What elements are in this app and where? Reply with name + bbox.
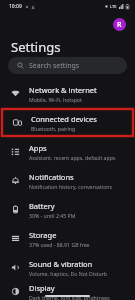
staticText: Connected devices [31,114,97,124]
button[interactable]: Account [113,18,126,31]
staticText: Sound & vibration [29,259,93,269]
staticText: Notification history, conversations [29,183,113,190]
staticText: R [117,20,122,30]
button[interactable]: Storage [0,225,135,252]
button[interactable]: Notifications [0,167,135,194]
staticText: Network & internet [29,85,97,95]
staticText: Storage [29,230,57,240]
button[interactable]: Search settings [8,57,127,74]
staticText: Settings [11,38,61,56]
staticText: Assistant, recent apps, default apps [29,154,116,161]
staticText: Display [29,283,55,293]
staticText: 37% used - 88.91 GB free [29,241,90,248]
staticText: Bluetooth, pairing [31,125,76,132]
staticText: Mobile, Wi-Fi, hotspot [29,96,82,103]
button[interactable]: Connected devices [2,109,133,136]
staticText: 30% - until 2:45 PM [29,212,76,219]
staticText: Battery [29,201,55,211]
staticText: Search settings [29,61,80,71]
button[interactable]: Battery [0,196,135,223]
button[interactable]: Display [0,283,135,300]
staticText: Volume, haptics, Do Not Disturb [29,270,108,277]
button[interactable]: Network & internet [0,80,135,107]
button[interactable]: Sound & vibration [0,254,135,281]
staticText: Notifications [29,172,74,182]
staticText: 10:09 [9,3,22,10]
button[interactable]: Apps [0,138,135,165]
staticText: Dark theme, font size, brightness [29,294,110,300]
staticText: LTE [110,4,117,9]
staticText: Apps [29,143,47,153]
